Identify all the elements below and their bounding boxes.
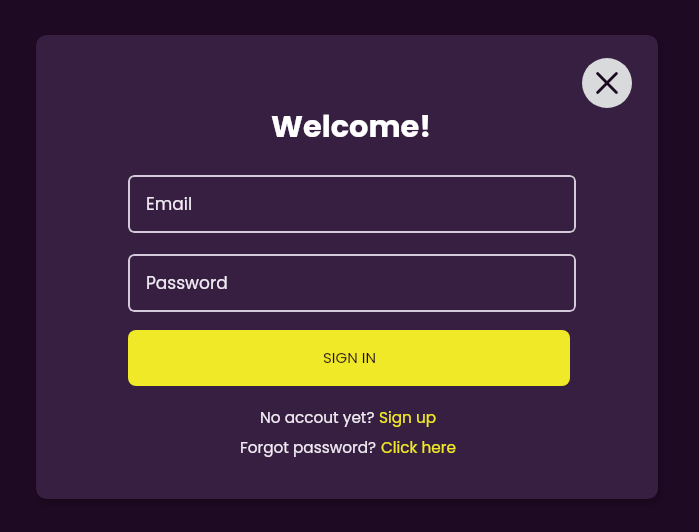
button[interactable]: SIGN IN xyxy=(128,330,570,386)
staticText: Forgot password? xyxy=(240,437,381,458)
button[interactable]: Click here xyxy=(381,437,457,458)
button[interactable]: Email xyxy=(128,175,576,233)
staticText: Welcome! xyxy=(271,105,432,148)
button[interactable]: Close xyxy=(582,58,632,108)
staticText: Password xyxy=(146,271,228,295)
button[interactable]: Sign up xyxy=(379,407,437,428)
staticText: Email xyxy=(146,192,193,216)
staticText: SIGN IN xyxy=(323,347,376,368)
button[interactable]: Password xyxy=(128,254,576,312)
staticText: No accout yet? xyxy=(260,407,379,428)
